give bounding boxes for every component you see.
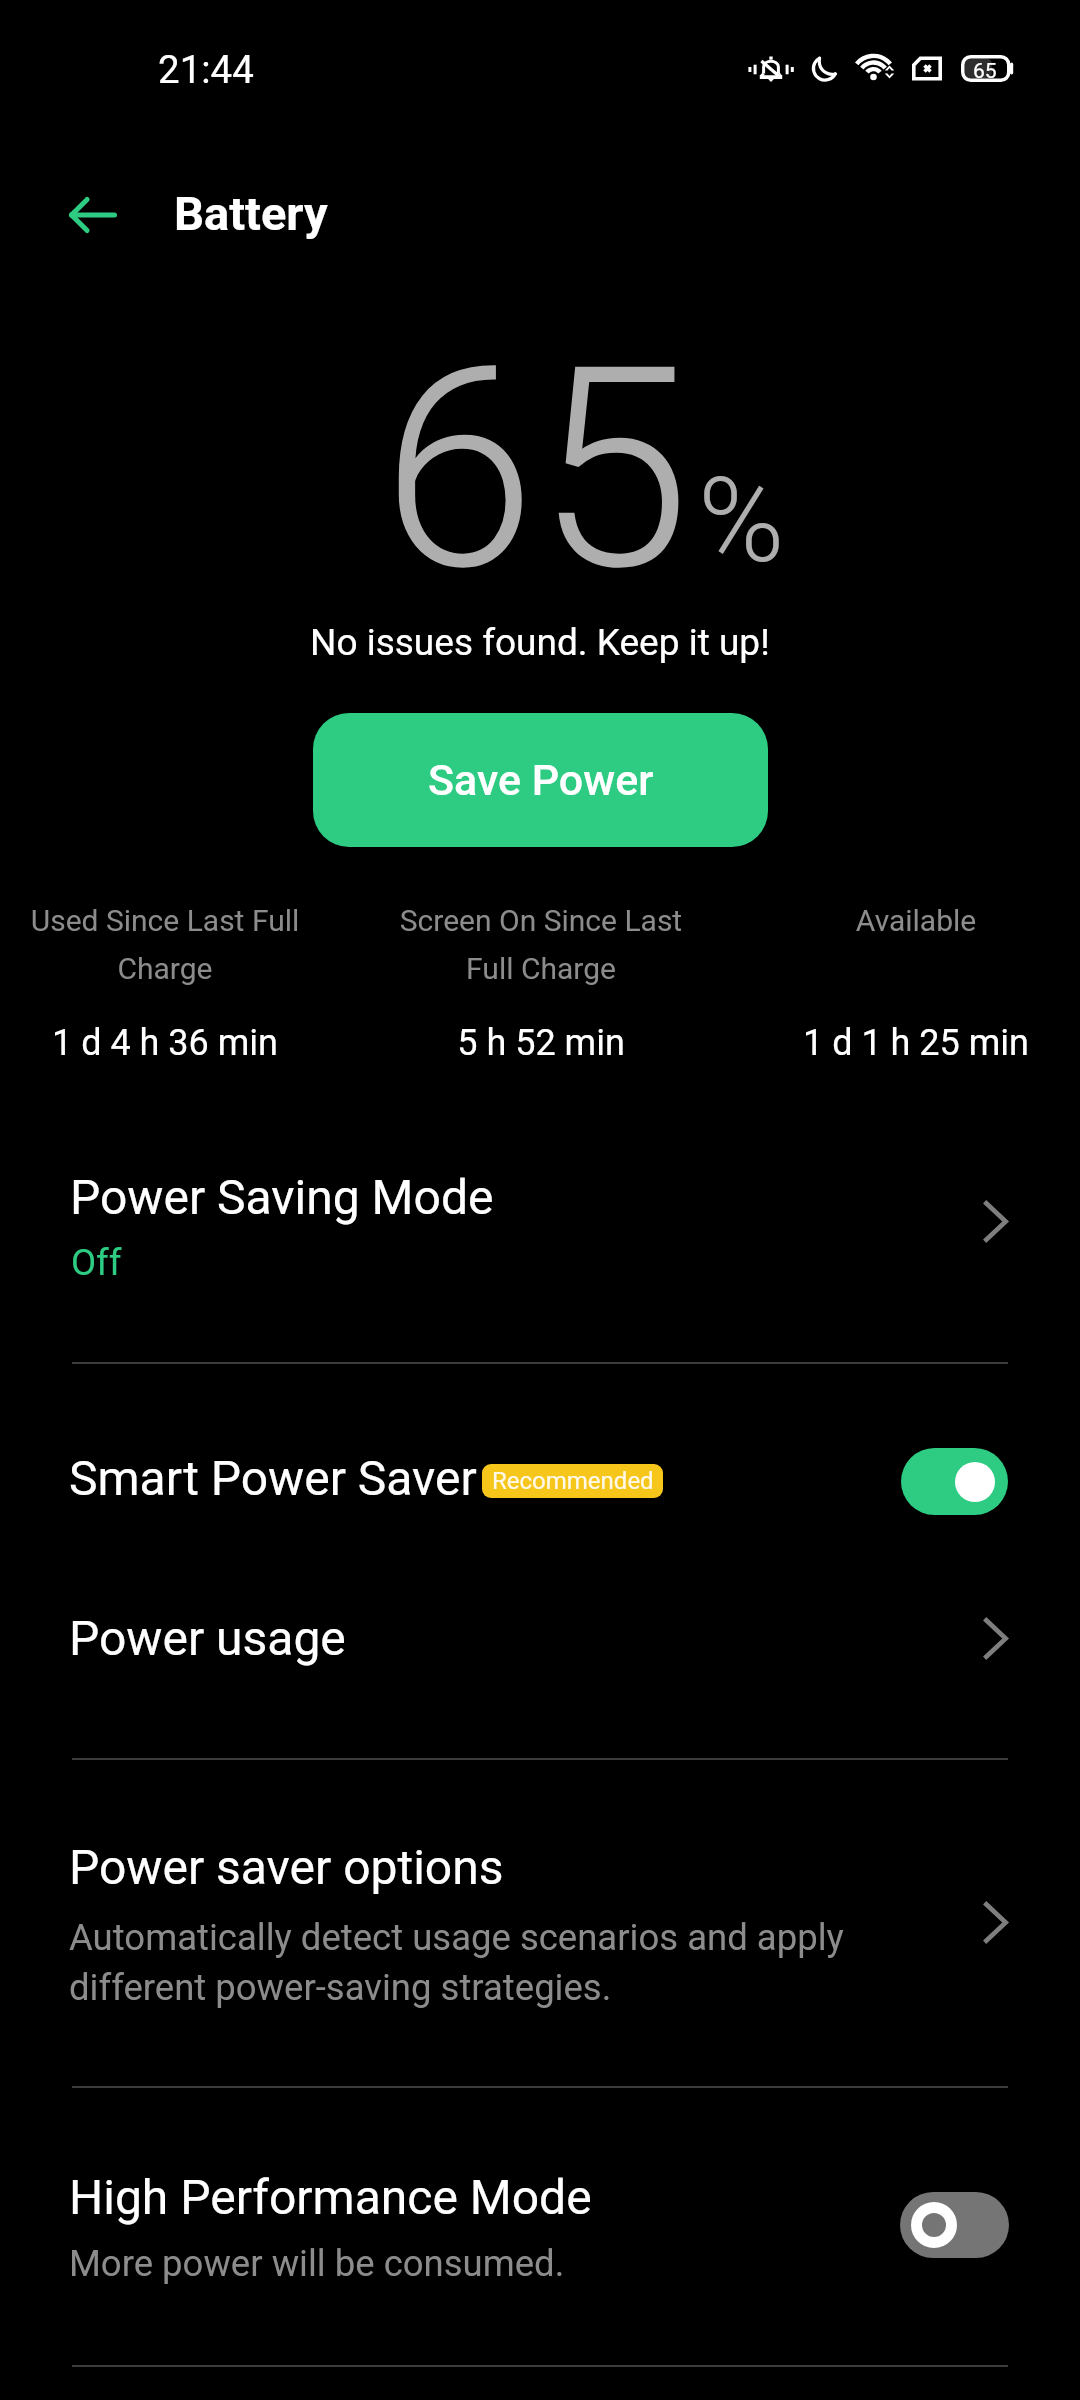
button[interactable]: High Performance Mode (0, 2116, 1080, 2365)
staticText: Power saver options (69, 1839, 504, 1895)
staticText: Automatically detect usage scenarios and… (69, 1916, 869, 2008)
staticText: 65 (381, 306, 691, 633)
staticText: High Performance Mode (69, 2169, 592, 2225)
button[interactable]: Power usage (0, 1568, 1080, 1758)
staticText: % (698, 452, 785, 589)
staticText: Power Saving Mode (70, 1169, 494, 1225)
button[interactable]: Power Saving Mode (0, 1120, 1080, 1362)
staticText: Recommended (492, 1467, 654, 1495)
staticText: Screen On Since Last Full Charge (381, 903, 701, 986)
staticText: 21:44 (158, 47, 254, 92)
staticText: 1 d 4 h 36 min (5, 1022, 325, 1064)
button[interactable]: Back (45, 167, 141, 263)
staticText: Battery (174, 186, 328, 241)
staticText: Save Power (428, 755, 654, 805)
staticText: Power usage (69, 1610, 346, 1666)
staticText: Smart Power Saver (69, 1450, 477, 1506)
staticText: 1 d 1 h 25 min (756, 1022, 1076, 1064)
staticText: More power will be consumed. (69, 2242, 565, 2285)
button[interactable]: High Performance Mode, off (900, 2192, 1009, 2258)
button[interactable]: Power saver options (0, 1788, 1080, 2086)
button[interactable]: Smart Power Saver (0, 1392, 1080, 1568)
button[interactable]: Save Power (313, 713, 768, 847)
staticText: 65 (973, 59, 997, 84)
staticText: Used Since Last Full Charge (5, 903, 325, 986)
staticText: 5 h 52 min (381, 1022, 701, 1064)
staticText: Available (756, 903, 1076, 938)
staticText: Off (71, 1241, 122, 1284)
staticText: No issues found. Keep it up! (310, 621, 770, 664)
button[interactable]: Smart Power Saver, on (901, 1448, 1008, 1515)
